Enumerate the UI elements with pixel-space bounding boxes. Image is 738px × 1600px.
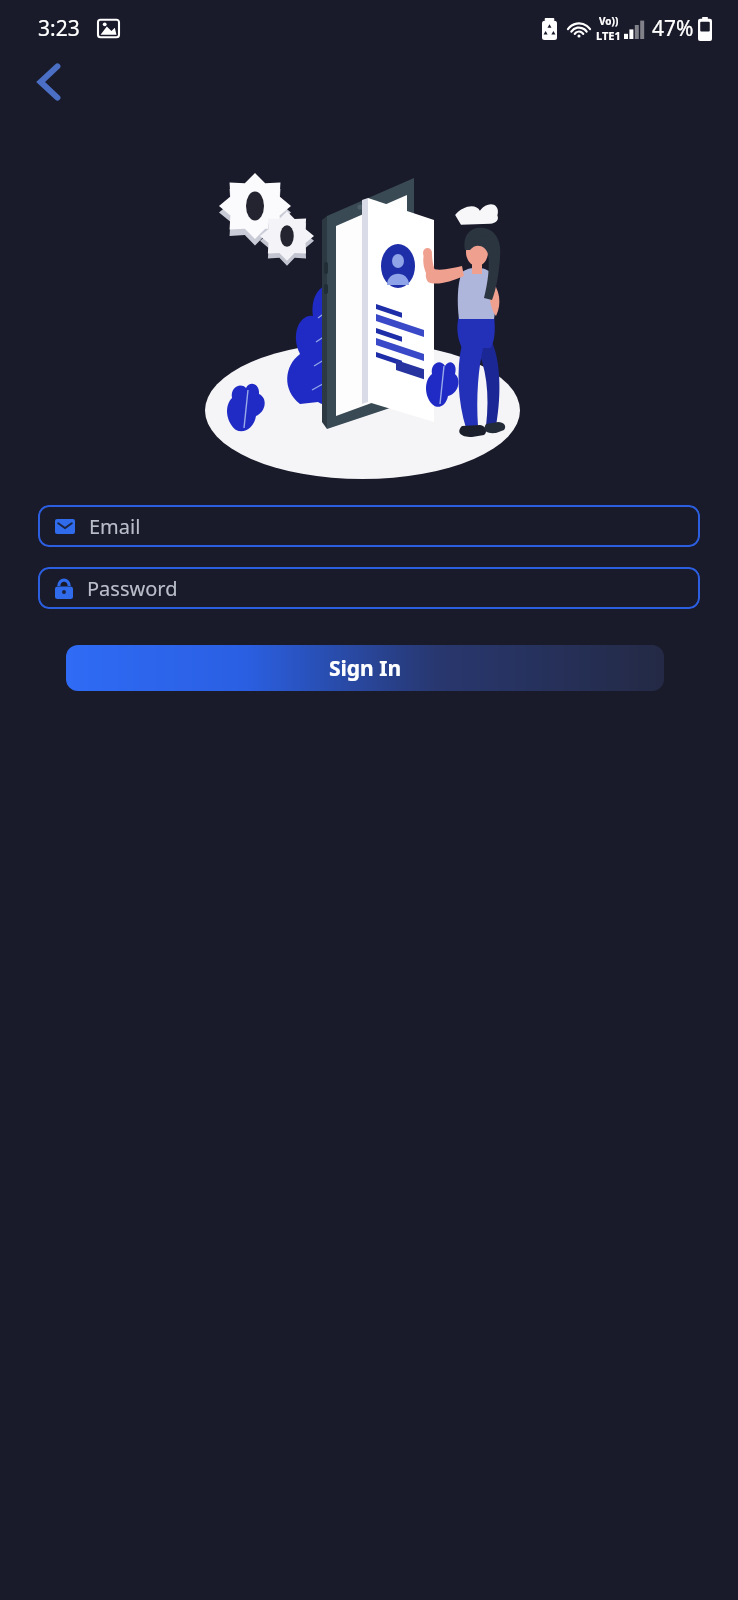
staticText: Email bbox=[89, 513, 141, 540]
staticText: 47% bbox=[652, 14, 694, 43]
staticText: Sign In bbox=[329, 654, 402, 683]
staticText: LTE1 bbox=[596, 28, 621, 43]
staticText: Password bbox=[87, 575, 178, 602]
button[interactable]: Sign In bbox=[66, 645, 664, 691]
button[interactable]: Email bbox=[38, 505, 700, 547]
button[interactable]: Back bbox=[20, 56, 78, 108]
staticText: 3:23 bbox=[38, 14, 80, 43]
staticText: Vo)) bbox=[599, 14, 619, 28]
button[interactable]: Password bbox=[38, 567, 700, 609]
